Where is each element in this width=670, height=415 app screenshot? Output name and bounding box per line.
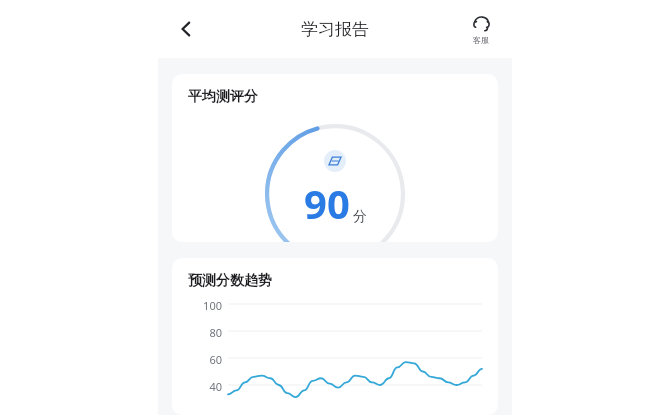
staticText: 分	[353, 208, 367, 226]
button[interactable]: 平均测评分	[172, 74, 498, 242]
staticText: 学习报告	[301, 19, 369, 40]
button[interactable]: 客服	[460, 14, 502, 45]
staticText: 80	[190, 325, 222, 340]
staticText: 40	[190, 379, 222, 394]
staticText: 平均测评分	[188, 88, 258, 106]
staticText: 100	[190, 298, 222, 313]
button[interactable]: Back	[164, 7, 208, 51]
staticText: 90	[304, 176, 350, 230]
staticText: 60	[190, 352, 222, 367]
staticText: 客服	[473, 35, 489, 45]
staticText: 预测分数趋势	[188, 272, 272, 290]
button[interactable]: 预测分数趋势	[172, 258, 498, 415]
